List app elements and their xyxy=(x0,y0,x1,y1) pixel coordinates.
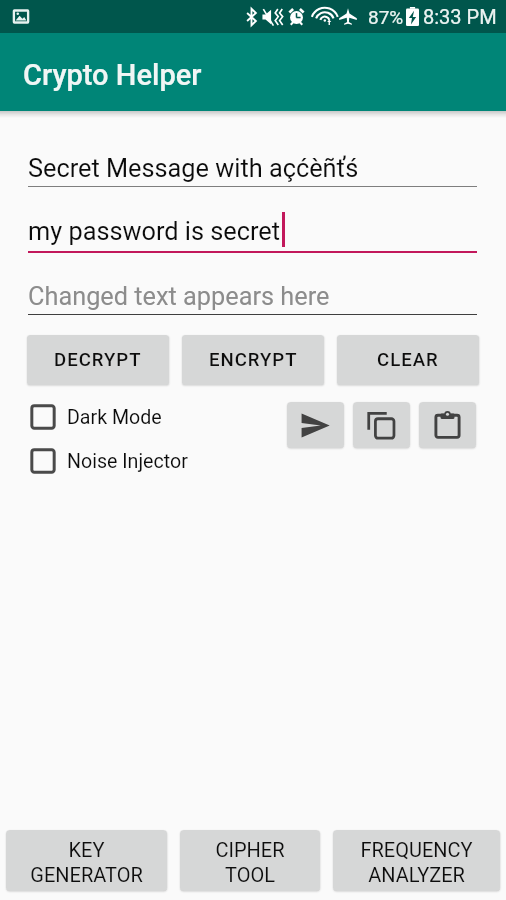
staticText: FREQUENCY ANALYZER xyxy=(360,838,473,887)
staticText: my password is secret xyxy=(28,217,281,247)
button[interactable]: FREQUENCY ANALYZER xyxy=(333,830,500,891)
button[interactable]: Send xyxy=(287,402,344,448)
button[interactable]: Paste xyxy=(419,402,476,448)
staticText: 87% xyxy=(368,6,404,28)
button[interactable]: DECRYPT xyxy=(27,335,169,385)
button[interactable]: Copy xyxy=(353,402,410,448)
staticText: Crypto Helper xyxy=(23,58,202,92)
button[interactable]: KEY GENERATOR xyxy=(6,830,167,891)
staticText: 8:33 PM xyxy=(423,5,497,28)
button[interactable]: Noise Injector xyxy=(30,448,188,474)
button[interactable]: Secret Message with açćèñťś xyxy=(28,154,477,187)
button[interactable]: Dark Mode xyxy=(30,404,162,430)
staticText: DECRYPT xyxy=(54,349,142,371)
button[interactable]: Changed text appears here xyxy=(28,282,477,315)
staticText: KEY GENERATOR xyxy=(30,838,143,887)
staticText: CLEAR xyxy=(377,349,439,371)
staticText: Dark Mode xyxy=(67,406,162,429)
button[interactable]: CIPHER TOOL xyxy=(180,830,320,891)
staticText: Noise Injector xyxy=(67,450,188,473)
staticText: Changed text appears here xyxy=(28,282,330,312)
button[interactable]: CLEAR xyxy=(337,335,479,385)
button[interactable]: ENCRYPT xyxy=(182,335,324,385)
staticText: CIPHER TOOL xyxy=(215,838,285,887)
staticText: ENCRYPT xyxy=(209,349,298,371)
staticText: Secret Message with açćèñťś xyxy=(28,154,359,184)
button[interactable]: my password is secret xyxy=(28,214,477,253)
